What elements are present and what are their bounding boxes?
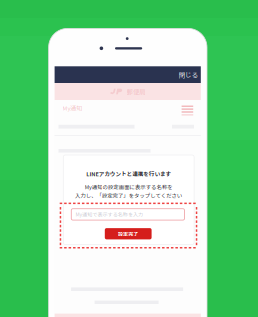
staticText: My通知 [46, 96, 99, 120]
button[interactable]: 設定完了 [105, 228, 152, 239]
staticText: 閉じる [164, 63, 212, 86]
staticText: 入力し、「設定完了」をタップしてください [0, 184, 258, 207]
staticText: 郵便局 [112, 80, 160, 103]
button[interactable]: My通知で表示する名称を入力 [71, 209, 184, 220]
staticText: LINEアカウントと連携を行います [7, 162, 251, 185]
button[interactable]: メニュー [182, 106, 193, 115]
button[interactable]: 閉じる [55, 66, 201, 83]
staticText: My通知の設定画面に表示する名称を [0, 175, 258, 199]
staticText: My通知で表示する名称を入力 [3, 203, 216, 226]
staticText: 設定完了 [96, 222, 160, 245]
